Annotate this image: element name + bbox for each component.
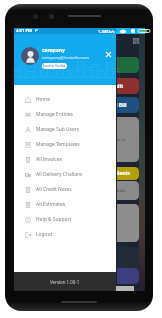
staticText: Manage Entities	[36, 111, 73, 118]
button[interactable]: Clients	[117, 167, 139, 180]
staticText: Manage Templates	[36, 141, 80, 148]
staticText: 1.30Kb/s	[98, 29, 115, 34]
button[interactable]: Invite India	[42, 63, 67, 69]
staticText: lable	[117, 188, 126, 194]
staticText: All Credit Notes	[36, 186, 72, 193]
staticText: 4:01 PM	[16, 28, 33, 34]
staticText: All Delivery Challans	[36, 171, 83, 178]
staticText: for to	[117, 137, 126, 143]
staticText: company	[42, 47, 65, 54]
button[interactable]: Manage Entities	[14, 107, 116, 122]
button[interactable]: Home	[14, 92, 116, 107]
staticText: Manage Sub Users	[36, 126, 80, 133]
button[interactable]: Credit Note	[117, 78, 139, 94]
button[interactable]: All Invoices	[14, 152, 116, 167]
staticText: All Estimates	[36, 201, 66, 208]
staticText: All Invoices	[36, 156, 62, 163]
staticText: Home	[36, 96, 50, 103]
button[interactable]: All Credit Notes	[14, 182, 116, 197]
staticText: Invite India	[43, 63, 66, 69]
button[interactable]: All Delivery Challans	[14, 167, 116, 182]
button[interactable]	[117, 57, 139, 73]
staticText: Logout	[36, 231, 53, 238]
staticText: Credit Note	[117, 83, 130, 90]
staticText: Help & Support	[36, 216, 72, 223]
button[interactable]: for to	[117, 117, 139, 162]
staticText: Clients	[117, 170, 131, 177]
staticText: Version 1.00-1	[50, 279, 80, 285]
button[interactable]: All Estimates	[14, 197, 116, 212]
button[interactable]: Manage Sub Users	[14, 122, 116, 137]
button[interactable]: Logout	[14, 227, 116, 242]
button[interactable]: Help & Support	[14, 212, 116, 227]
other: Scan QR code	[133, 38, 139, 44]
button[interactable]: Close drawer	[103, 49, 113, 59]
button[interactable]	[117, 268, 139, 284]
button[interactable]	[117, 204, 139, 242]
staticText: P	[35, 28, 38, 34]
staticText: company@invindia.com	[42, 55, 89, 61]
button[interactable]: Manage Templates	[14, 137, 116, 152]
button[interactable]: lable	[117, 181, 139, 200]
button[interactable]: al Bill	[117, 97, 139, 113]
staticText: al Bill	[117, 102, 127, 109]
